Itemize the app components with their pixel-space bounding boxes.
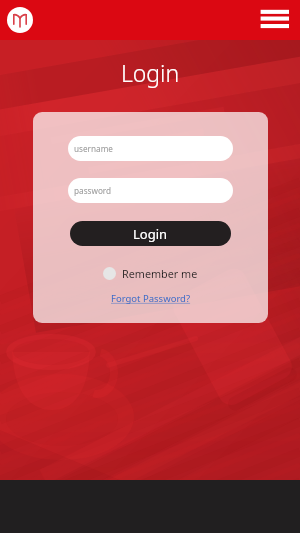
button[interactable]: Menu	[249, 0, 289, 40]
staticText: Remember me	[122, 266, 198, 281]
button[interactable]: Home	[7, 7, 33, 33]
button[interactable]: username	[68, 136, 233, 161]
staticText: Login	[0, 57, 300, 88]
button[interactable]: Login	[70, 221, 231, 246]
staticText: Login	[133, 225, 168, 243]
staticText: password	[74, 185, 112, 196]
button[interactable]: Forgot Password?	[111, 292, 191, 305]
button[interactable]: Remember me	[103, 266, 198, 281]
button[interactable]: password	[68, 178, 233, 203]
staticText: username	[74, 143, 113, 154]
